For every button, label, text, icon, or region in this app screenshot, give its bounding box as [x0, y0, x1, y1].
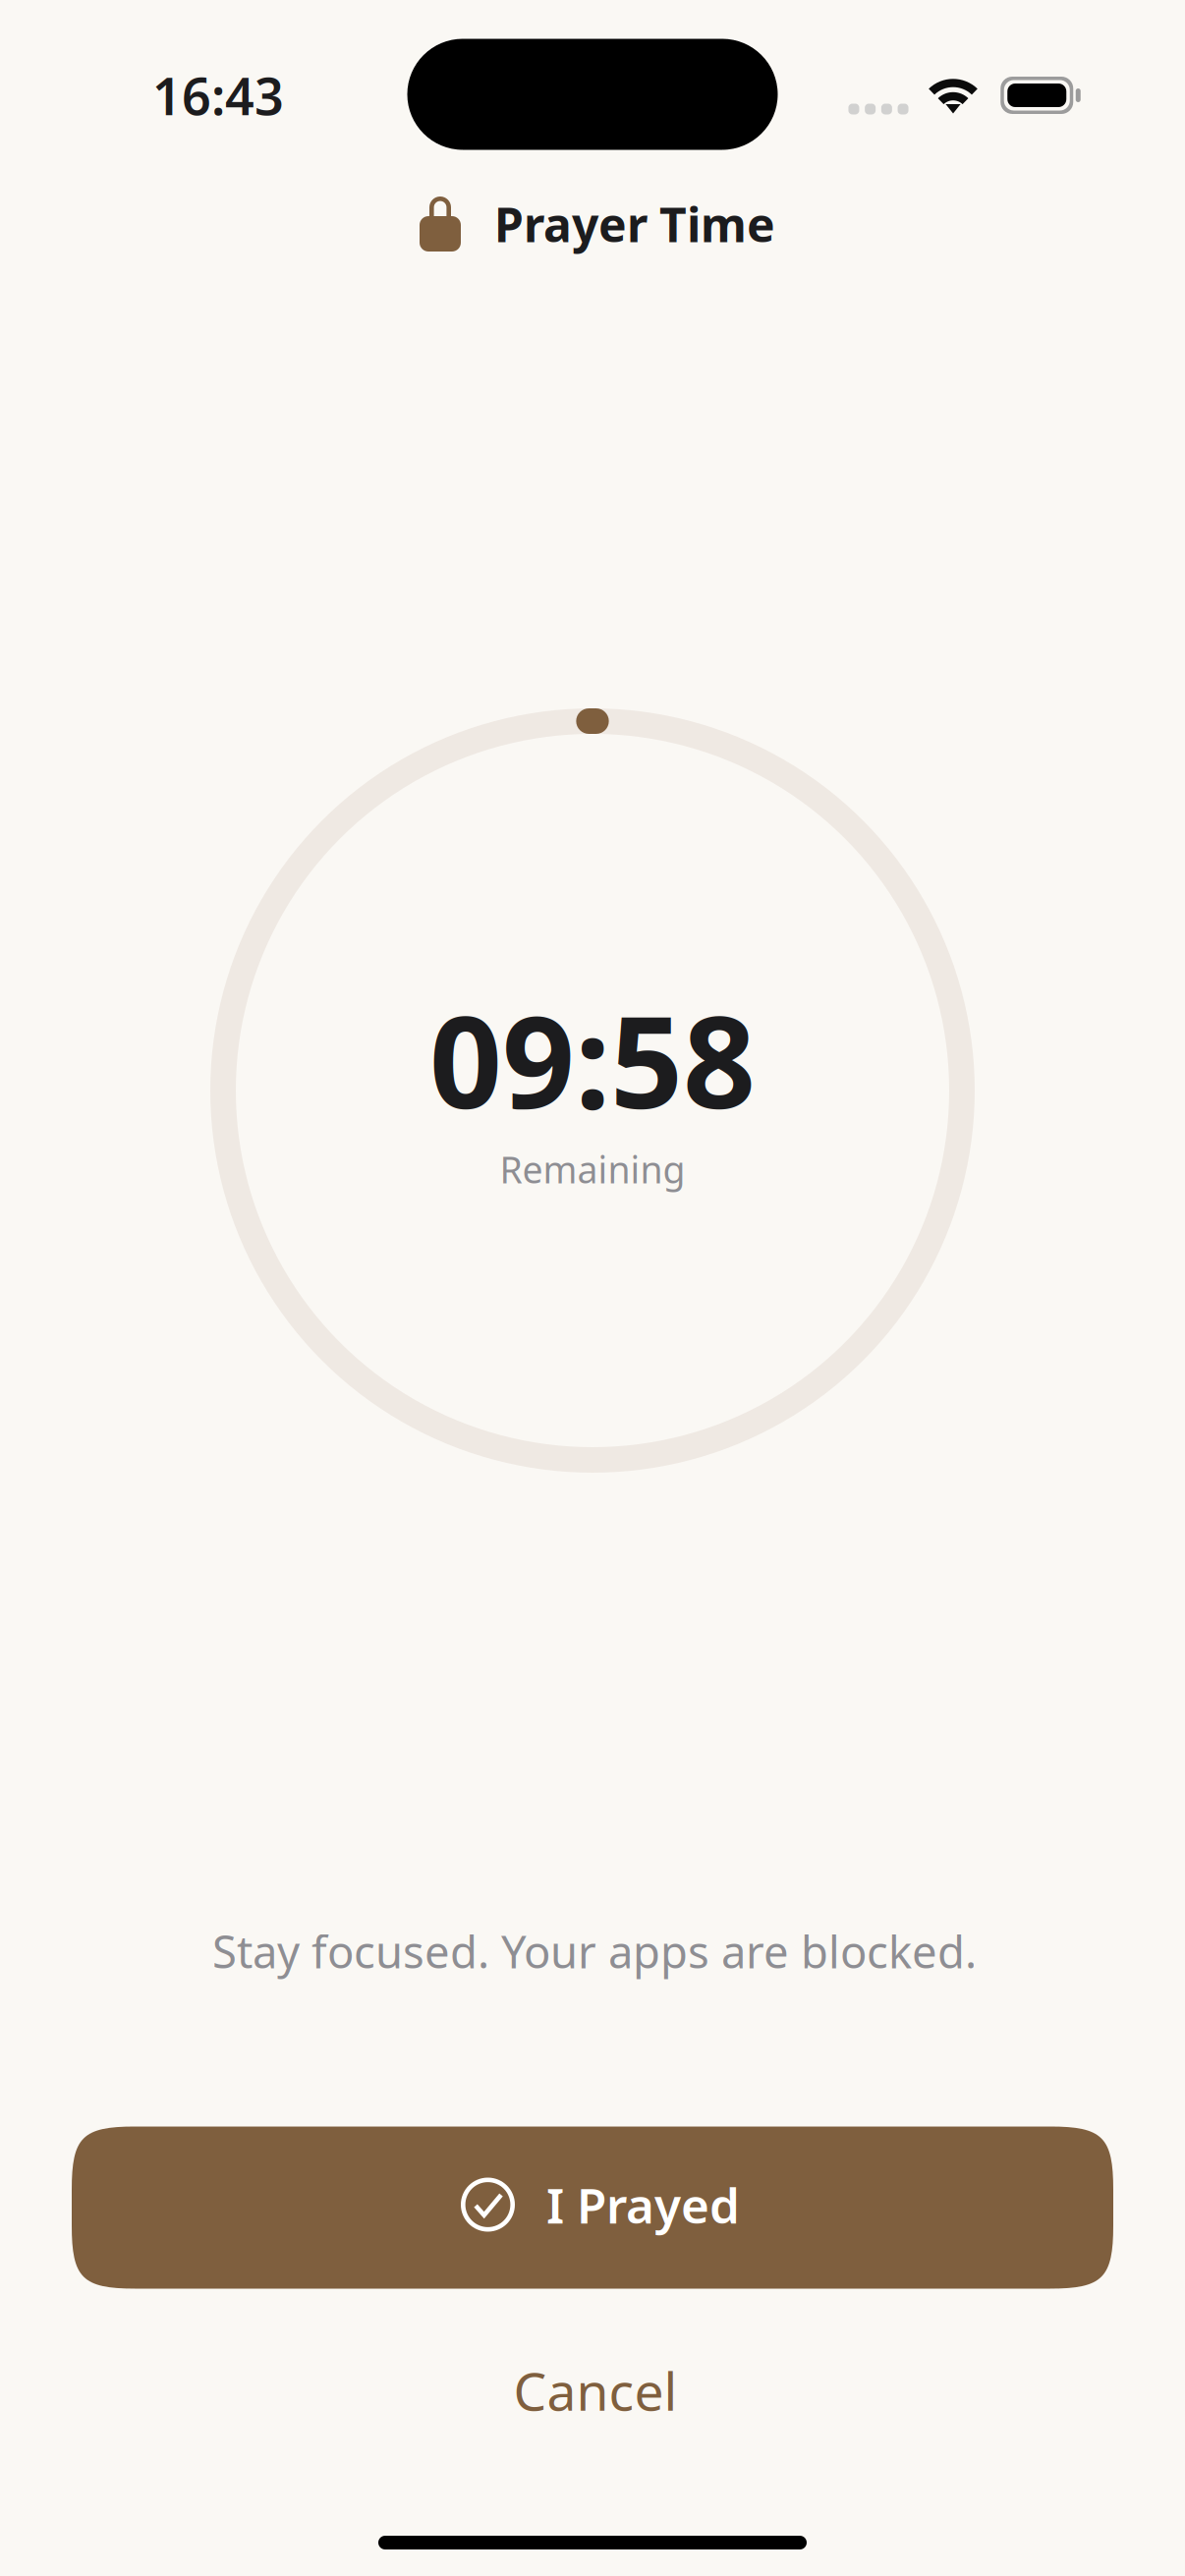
staticText: 09:58	[429, 975, 756, 1143]
button[interactable]: Cancel	[360, 2336, 831, 2444]
button[interactable]: I Prayed	[72, 2127, 1113, 2289]
staticText: Cancel	[513, 2356, 677, 2425]
staticText: 16:43	[152, 61, 284, 129]
staticText: Stay focused. Your apps are blocked.	[212, 1922, 977, 1981]
staticText: Remaining	[500, 1145, 685, 1193]
staticText: Prayer Time	[494, 193, 775, 255]
staticText: I Prayed	[546, 2172, 740, 2237]
